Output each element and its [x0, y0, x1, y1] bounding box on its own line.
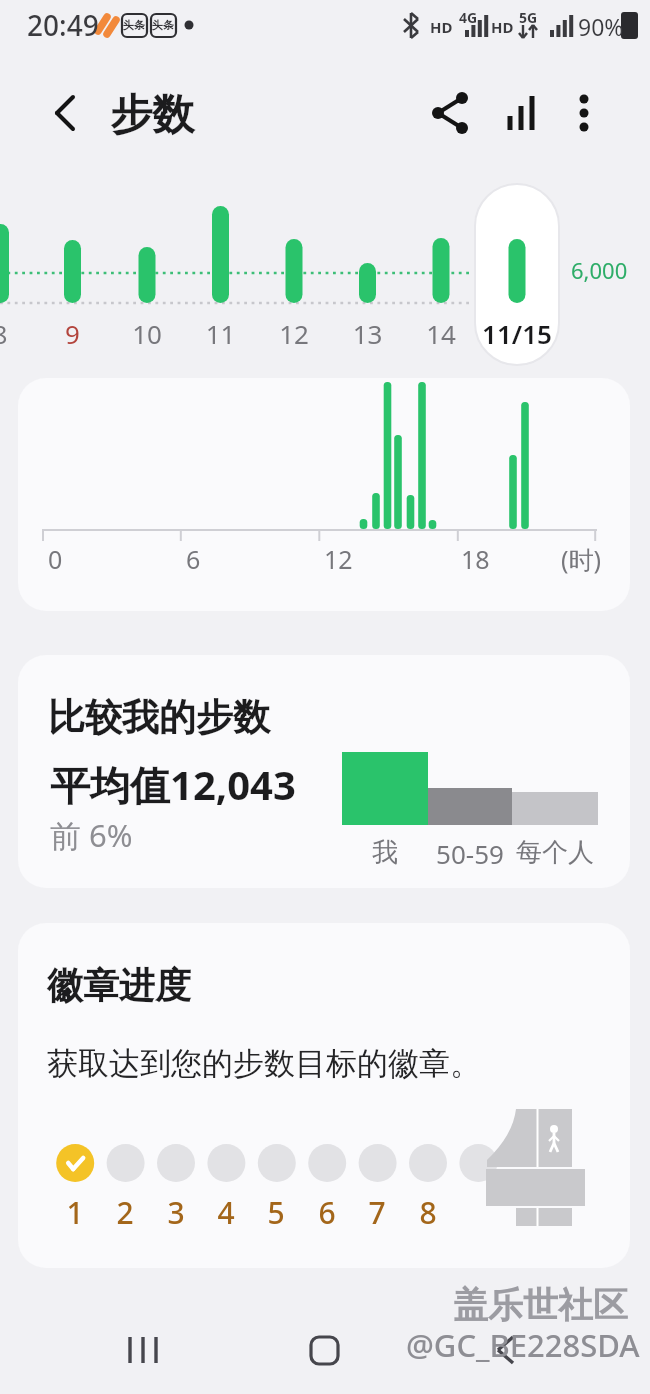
staticText: 每个人: [512, 836, 598, 869]
staticText: 6,000: [571, 255, 628, 285]
button[interactable]: [560, 88, 608, 138]
staticText: 7: [361, 1192, 393, 1233]
staticText: 8: [412, 1192, 444, 1233]
staticText: 6: [186, 542, 201, 576]
staticText: 步数: [110, 89, 194, 142]
staticText: 我: [342, 836, 428, 869]
staticText: 0: [48, 542, 63, 576]
staticText: 头条: [123, 18, 145, 32]
staticText: 11: [204, 316, 237, 351]
button[interactable]: [18, 923, 630, 1268]
button[interactable]: [299, 1325, 349, 1375]
staticText: 18: [461, 542, 490, 576]
staticText: (时): [561, 542, 602, 576]
staticText: 平均值12,043: [50, 757, 296, 812]
staticText: @GC_BE228SDA: [406, 1324, 640, 1366]
button[interactable]: [105, 1325, 155, 1375]
staticText: 90%: [578, 11, 624, 42]
staticText: 3: [160, 1192, 192, 1233]
staticText: 1: [59, 1192, 91, 1233]
staticText: 5: [260, 1192, 292, 1233]
staticText: 头条: [152, 18, 174, 32]
staticText: 2: [109, 1192, 141, 1233]
staticText: 获取达到您的步数目标的徽章。: [47, 1044, 481, 1083]
staticText: HD: [491, 17, 514, 37]
staticText: 50-59: [428, 836, 512, 871]
staticText: 12: [324, 542, 353, 576]
staticText: 盖乐世社区: [453, 1283, 628, 1327]
button[interactable]: [425, 88, 475, 138]
button[interactable]: [40, 90, 90, 136]
staticText: 11/15: [477, 316, 557, 351]
staticText: 8: [0, 316, 10, 351]
staticText: 6: [311, 1192, 343, 1233]
staticText: 13: [351, 316, 384, 351]
button[interactable]: [18, 655, 630, 888]
staticText: 14: [425, 316, 457, 351]
staticText: 徽章进度: [47, 963, 191, 1008]
staticText: 5G: [519, 8, 538, 27]
staticText: 前 6%: [50, 814, 133, 856]
staticText: 9: [57, 316, 88, 351]
staticText: HD: [430, 17, 453, 37]
button[interactable]: [485, 1325, 535, 1375]
staticText: 12: [278, 316, 310, 351]
staticText: 4: [210, 1192, 242, 1233]
button[interactable]: [18, 378, 630, 611]
button[interactable]: [475, 184, 559, 365]
button[interactable]: [495, 88, 545, 138]
staticText: 比较我的步数: [48, 694, 270, 741]
staticText: 10: [131, 316, 163, 351]
staticText: 4G: [459, 8, 478, 27]
staticText: 20:49: [27, 6, 99, 44]
